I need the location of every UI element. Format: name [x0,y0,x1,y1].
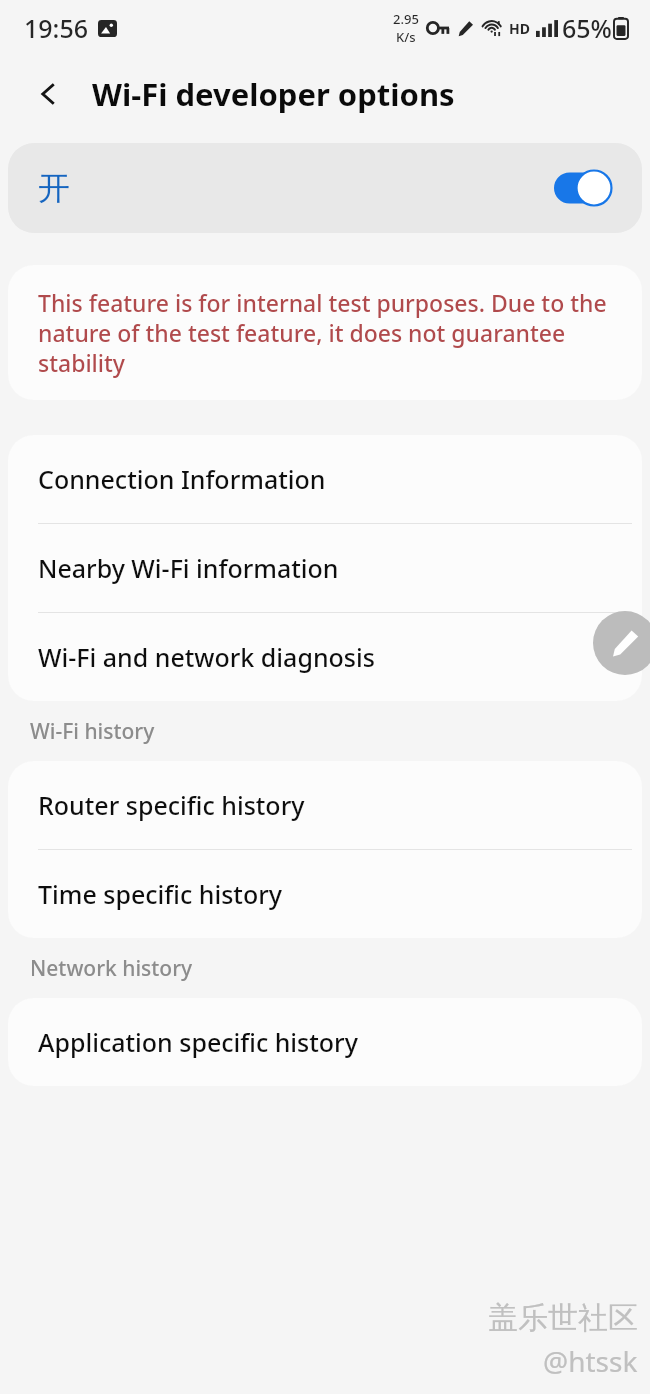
button[interactable]: Router specific history [8,761,642,849]
staticText: HD [509,19,530,38]
staticText: Nearby Wi-Fi information [38,551,339,585]
button[interactable]: Wi-Fi and network diagnosis [8,613,642,701]
staticText: Wi-Fi history [30,717,155,746]
button[interactable]: Nearby Wi-Fi information [8,524,642,612]
staticText: 65% [562,11,612,45]
staticText: Wi-Fi developer options [92,73,455,115]
staticText: 开 [38,168,70,208]
staticText: @htssk [543,1342,638,1380]
staticText: This feature is for internal test purpos… [38,287,612,378]
staticText: Application specific history [38,1025,358,1059]
staticText: Wi-Fi and network diagnosis [38,640,375,674]
staticText: K/s [396,28,416,46]
button[interactable]: Edit [593,611,650,675]
button[interactable]: Application specific history [8,998,642,1086]
staticText: Network history [30,954,193,983]
button[interactable]: Time specific history [8,850,642,938]
staticText: 盖乐世社区 [488,1299,638,1337]
button[interactable]: Connection Information [8,435,642,523]
button[interactable]: Back [20,66,76,122]
staticText: Connection Information [38,462,326,496]
staticText: 19:56 [24,11,89,45]
staticText: Router specific history [38,788,305,822]
button[interactable]: 开 [8,143,642,233]
staticText: 2.95 [393,10,419,28]
staticText: Time specific history [38,877,282,911]
